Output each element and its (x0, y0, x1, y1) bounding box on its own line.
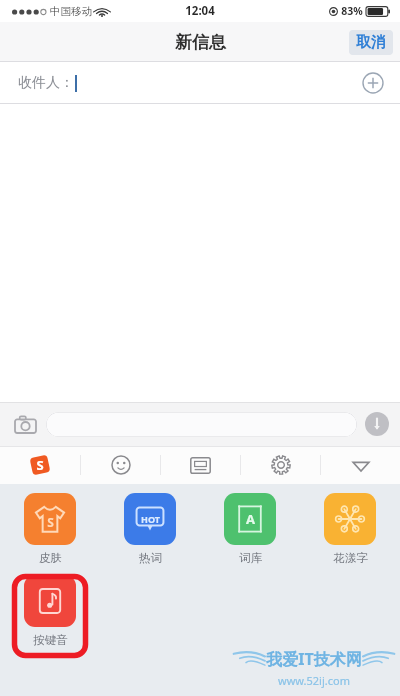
staticText: 取消 (356, 33, 386, 52)
staticText: 中国移动 (50, 5, 92, 18)
button[interactable]: A (200, 493, 300, 565)
staticText: 热词 (139, 551, 162, 565)
staticText: S (47, 514, 54, 530)
staticText: 83% (341, 4, 363, 18)
staticText: 皮肤 (39, 551, 62, 565)
button[interactable] (46, 412, 357, 437)
button[interactable]: Sogou input (0, 446, 80, 484)
staticText: S (36, 456, 44, 474)
button[interactable]: HOT (100, 493, 200, 565)
button[interactable]: Camera (10, 409, 40, 439)
button[interactable]: Phrases (161, 446, 240, 484)
button[interactable]: 花漾字 (300, 493, 400, 565)
button[interactable]: Emoji (81, 446, 160, 484)
staticText: 花漾字 (333, 551, 368, 565)
staticText: 新信息 (175, 32, 226, 53)
button[interactable]: Settings (241, 446, 320, 484)
staticText: HOT (141, 513, 160, 525)
button[interactable]: S (0, 493, 100, 565)
staticText: A (246, 510, 255, 528)
staticText: 12:04 (185, 3, 215, 19)
staticText: 收件人： (18, 74, 74, 92)
staticText: 我爱IT技术网 (266, 648, 362, 670)
staticText: 按键音 (33, 633, 68, 647)
button[interactable]: Add contact (358, 68, 388, 98)
button[interactable]: 取消 (349, 30, 393, 55)
button[interactable]: Send (364, 411, 390, 437)
staticText: 词库 (239, 551, 262, 565)
staticText: www.52ij.com (278, 673, 350, 688)
button[interactable]: 按键音 (13, 575, 87, 657)
button[interactable]: Hide keyboard (321, 446, 400, 484)
